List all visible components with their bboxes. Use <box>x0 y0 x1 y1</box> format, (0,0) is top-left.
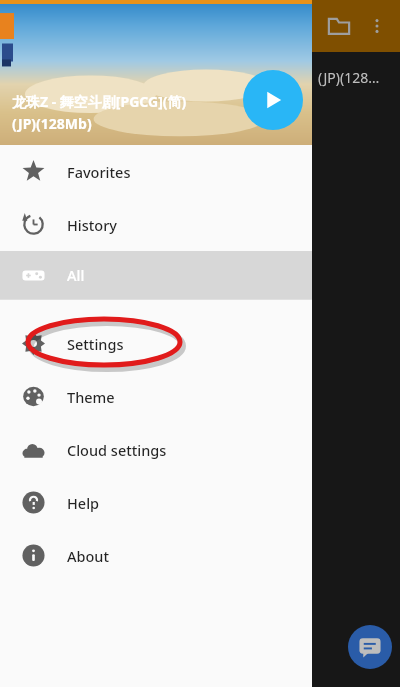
button[interactable]: History <box>0 198 312 251</box>
staticText: Theme <box>67 387 115 407</box>
staticText: Help <box>67 493 100 513</box>
staticText: All <box>67 265 85 285</box>
button[interactable]: More options <box>362 11 392 41</box>
staticText: Settings <box>67 334 124 354</box>
staticText: Cloud settings <box>67 440 167 460</box>
staticText: Favorites <box>67 162 131 182</box>
button[interactable]: Favorites <box>0 145 312 198</box>
button[interactable]: Messages <box>348 625 392 669</box>
button[interactable]: Theme <box>0 370 312 423</box>
button[interactable]: Cloud settings <box>0 423 312 476</box>
button[interactable]: Play <box>243 70 303 130</box>
button[interactable]: Folder <box>322 9 356 43</box>
button[interactable]: Settings <box>0 317 312 370</box>
staticText: (JP)(128Mb) <box>12 114 92 133</box>
staticText: 龙珠Z - 舞空斗剧[PGCG](简) <box>12 92 187 111</box>
button[interactable]: All <box>0 251 312 299</box>
staticText: About <box>67 546 109 566</box>
staticText: History <box>67 215 118 235</box>
button[interactable]: Help <box>0 476 312 529</box>
button[interactable]: About <box>0 529 312 582</box>
staticText: (JP)(128… <box>318 68 380 87</box>
